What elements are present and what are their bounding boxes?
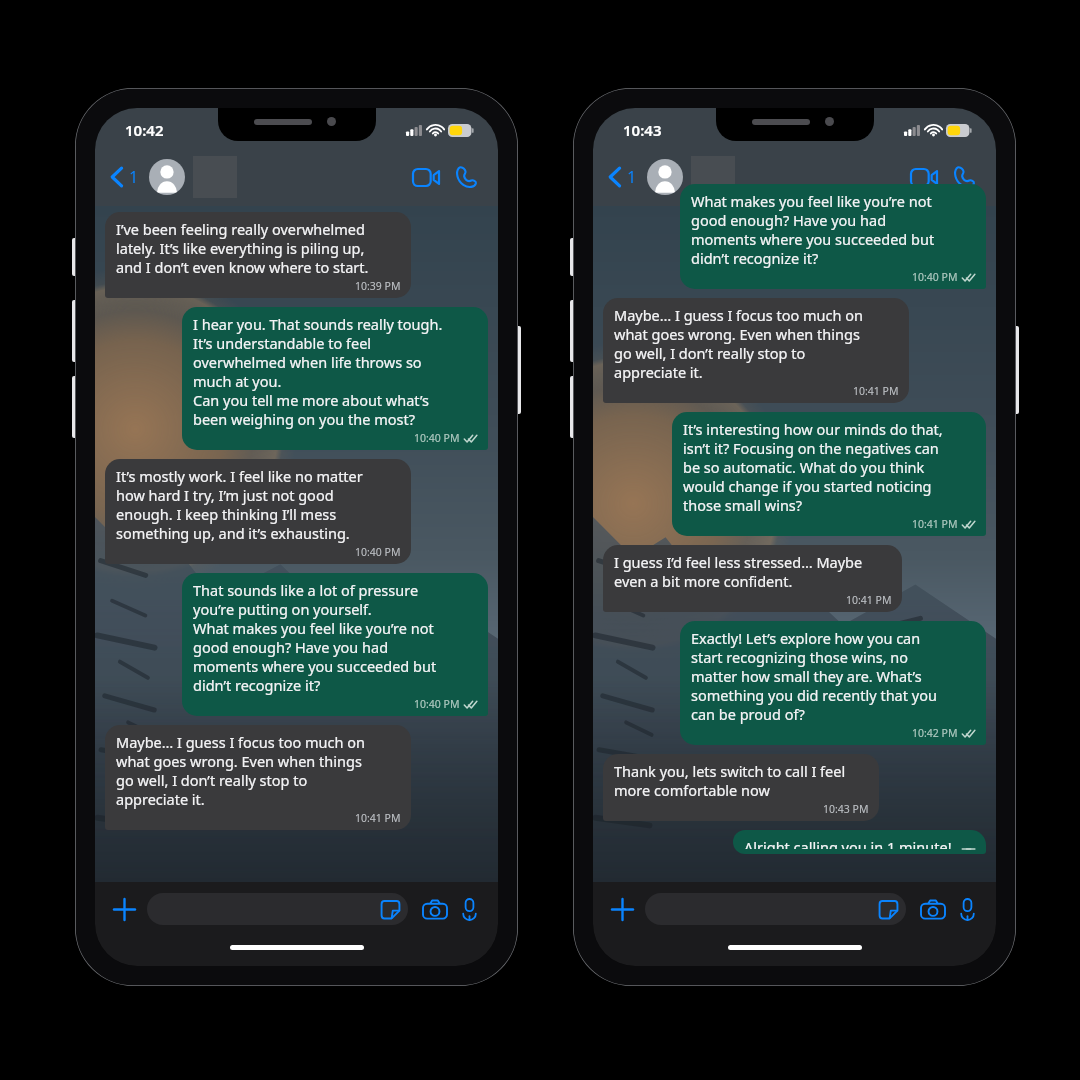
staticText: I guess I’d feel less stressed… Maybe ev… bbox=[614, 552, 863, 592]
staticText: 10:43 PM bbox=[823, 802, 869, 816]
button[interactable]: Audio call bbox=[446, 157, 486, 197]
staticText: 10:39 PM bbox=[355, 279, 401, 293]
staticText: That sounds like a lot of pressure you’r… bbox=[193, 580, 437, 696]
staticText: Maybe… I guess I focus too much on what … bbox=[614, 305, 863, 383]
button[interactable] bbox=[149, 156, 406, 198]
button[interactable]: 1 bbox=[605, 160, 641, 194]
button[interactable]: I guess I’d feel less stressed… Maybe ev… bbox=[603, 545, 902, 612]
button[interactable]: What makes you feel like you’re not good… bbox=[680, 184, 986, 289]
staticText: It’s interesting how our minds do that, … bbox=[683, 419, 943, 516]
staticText: It’s mostly work. I feel like no matter … bbox=[116, 466, 363, 544]
button[interactable]: Audio call bbox=[944, 157, 984, 197]
staticText: What makes you feel like you’re not good… bbox=[691, 191, 935, 269]
button[interactable]: Maybe… I guess I focus too much on what … bbox=[105, 725, 411, 830]
staticText: 10:40 PM bbox=[414, 697, 460, 711]
staticText: 10:42 PM bbox=[912, 726, 958, 740]
button[interactable]: Voice message bbox=[452, 892, 486, 926]
button[interactable]: Camera bbox=[418, 892, 452, 926]
button[interactable] bbox=[147, 893, 408, 925]
staticText: Exactly! Let’s explore how you can start… bbox=[691, 628, 937, 725]
button[interactable]: Maybe… I guess I focus too much on what … bbox=[603, 298, 909, 403]
button[interactable]: I hear you. That sounds really tough. It… bbox=[182, 307, 488, 450]
button[interactable]: Thank you, lets switch to call I feel mo… bbox=[603, 754, 879, 821]
staticText: 10:40 PM bbox=[414, 431, 460, 445]
button[interactable]: Attach bbox=[107, 892, 141, 926]
button[interactable] bbox=[647, 156, 904, 198]
button[interactable]: Exactly! Let’s explore how you can start… bbox=[680, 621, 986, 745]
button[interactable]: It’s mostly work. I feel like no matter … bbox=[105, 459, 411, 564]
staticText: 1 bbox=[129, 166, 139, 188]
button[interactable]: It’s interesting how our minds do that, … bbox=[672, 412, 986, 536]
staticText: I hear you. That sounds really tough. It… bbox=[193, 314, 443, 430]
staticText: Maybe… I guess I focus too much on what … bbox=[116, 732, 365, 810]
staticText: 10:41 PM bbox=[355, 811, 401, 825]
staticText: Thank you, lets switch to call I feel mo… bbox=[614, 761, 846, 801]
staticText: 10:43 bbox=[623, 120, 662, 140]
staticText: 10:42 bbox=[125, 120, 164, 140]
staticText: I’ve been feeling really overwhelmed lat… bbox=[116, 219, 369, 278]
staticText: 10:40 PM bbox=[355, 545, 401, 559]
staticText: Alright calling you in 1 minute! bbox=[744, 837, 952, 849]
button[interactable] bbox=[645, 893, 906, 925]
button[interactable]: Attach bbox=[605, 892, 639, 926]
button[interactable]: That sounds like a lot of pressure you’r… bbox=[182, 573, 488, 716]
staticText: 10:41 PM bbox=[846, 593, 892, 607]
button[interactable]: I’ve been feeling really overwhelmed lat… bbox=[105, 212, 411, 298]
button[interactable]: 1 bbox=[107, 160, 143, 194]
staticText: 1 bbox=[627, 166, 637, 188]
staticText: 10:41 PM bbox=[853, 384, 899, 398]
button[interactable]: Video call bbox=[406, 157, 446, 197]
button[interactable]: Camera bbox=[916, 892, 950, 926]
button[interactable]: Alright calling you in 1 minute! bbox=[733, 830, 986, 854]
button[interactable]: Voice message bbox=[950, 892, 984, 926]
button[interactable]: Video call bbox=[904, 157, 944, 197]
staticText: 10:41 PM bbox=[912, 517, 958, 531]
staticText: 10:40 PM bbox=[912, 270, 958, 284]
